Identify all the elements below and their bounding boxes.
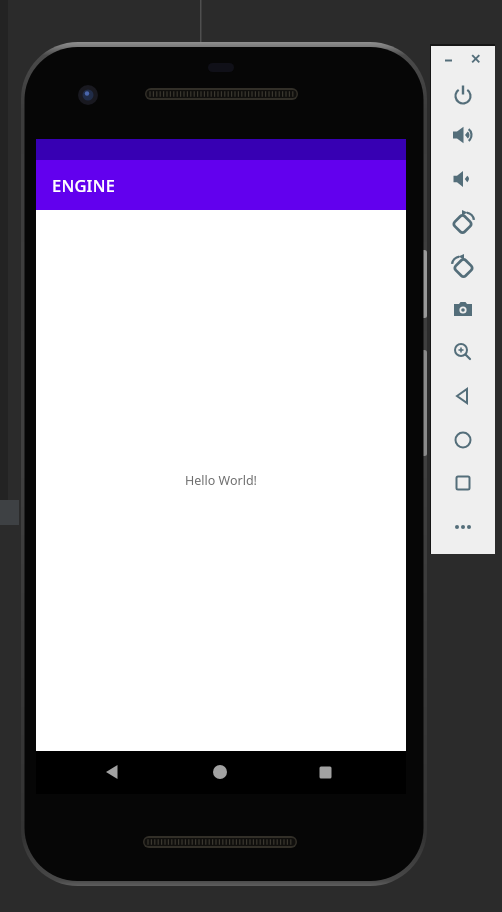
button[interactable] [443,115,483,155]
button[interactable] [92,752,132,792]
button[interactable] [443,463,483,503]
button[interactable] [443,420,483,460]
button[interactable] [443,246,483,286]
button[interactable] [443,75,483,115]
button[interactable] [443,159,483,199]
button[interactable]: ENGINE [36,160,406,210]
button[interactable] [443,289,483,329]
button[interactable] [200,752,240,792]
button[interactable] [438,50,459,68]
staticText: Hello World! [185,472,257,489]
button[interactable] [443,507,483,547]
button[interactable] [443,376,483,416]
button[interactable] [443,332,483,372]
staticText: ENGINE [52,174,116,196]
button[interactable] [465,50,487,68]
button[interactable] [443,202,483,242]
button[interactable] [305,752,345,792]
